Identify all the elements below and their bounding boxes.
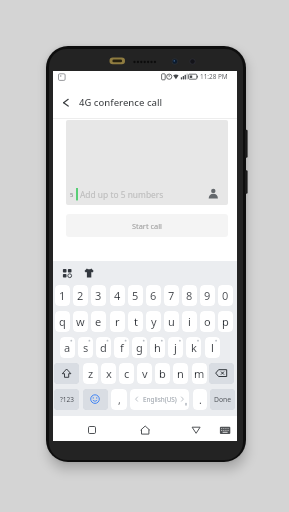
staticText: m	[194, 366, 205, 381]
staticText: j	[174, 340, 177, 355]
button[interactable]: c	[119, 363, 134, 384]
staticText: 6	[150, 288, 157, 303]
staticText: ?123	[60, 395, 74, 404]
button[interactable]: h	[150, 337, 165, 358]
button[interactable]	[189, 423, 203, 437]
button[interactable]	[54, 363, 79, 384]
button[interactable]: ,	[111, 389, 127, 410]
button[interactable]: Start call	[66, 214, 228, 237]
button[interactable]: x	[101, 363, 116, 384]
button[interactable]: n	[173, 363, 188, 384]
staticText: 5	[70, 191, 74, 199]
staticText: Done	[214, 395, 232, 404]
staticText: Start call	[132, 221, 163, 231]
button[interactable]: j	[168, 337, 183, 358]
button[interactable]: u	[164, 311, 179, 332]
button[interactable]: o	[200, 311, 215, 332]
button[interactable]: y	[146, 311, 161, 332]
button[interactable]: 1	[55, 285, 70, 306]
button[interactable]	[218, 423, 232, 437]
staticText: 1	[59, 288, 66, 303]
button[interactable]: 2	[73, 285, 88, 306]
staticText: 11:28 PM	[200, 72, 228, 80]
button[interactable]	[138, 423, 152, 437]
button[interactable]: s	[78, 337, 93, 358]
button[interactable]: z	[83, 363, 98, 384]
button[interactable]: f	[114, 337, 129, 358]
staticText: 7	[168, 288, 175, 303]
button[interactable]	[58, 93, 78, 111]
staticText: c	[124, 366, 130, 381]
button[interactable]	[60, 264, 75, 279]
button[interactable]	[66, 120, 228, 205]
staticText: y	[151, 314, 157, 329]
button[interactable]	[130, 389, 189, 410]
staticText: w	[76, 314, 85, 329]
staticText: Add up to 5 numbers	[80, 189, 164, 200]
button[interactable]: w	[73, 311, 88, 332]
staticText: o	[204, 314, 211, 329]
button[interactable]: .	[193, 389, 207, 410]
button[interactable]: l	[205, 337, 220, 358]
staticText: 8	[186, 288, 193, 303]
staticText: 4	[114, 288, 121, 303]
button[interactable]: 9	[200, 285, 215, 306]
button[interactable]: g	[132, 337, 147, 358]
button[interactable]: t	[128, 311, 143, 332]
staticText: 5	[132, 288, 139, 303]
staticText: d	[100, 340, 107, 355]
staticText: 4G conference call	[79, 96, 163, 109]
staticText: a	[64, 340, 71, 355]
staticText: f	[120, 340, 124, 355]
button[interactable]: i	[182, 311, 197, 332]
button[interactable]: 3	[91, 285, 106, 306]
staticText: .	[199, 393, 202, 407]
button[interactable]: 6	[146, 285, 161, 306]
staticText: n	[177, 366, 184, 381]
button[interactable]	[82, 264, 97, 279]
staticText: k	[191, 340, 197, 355]
staticText: 3	[95, 288, 102, 303]
staticText: q	[59, 314, 66, 329]
staticText: 9	[204, 288, 211, 303]
staticText: p	[222, 314, 229, 329]
button[interactable]: 8	[182, 285, 197, 306]
button[interactable]: p	[218, 311, 233, 332]
button[interactable]	[83, 389, 108, 410]
button[interactable]: v	[137, 363, 152, 384]
button[interactable]: r	[110, 311, 125, 332]
staticText: v	[142, 366, 148, 381]
button[interactable]: e	[91, 311, 106, 332]
button[interactable]: 7	[164, 285, 179, 306]
staticText: English(US)	[143, 395, 177, 404]
button[interactable]: a	[60, 337, 75, 358]
button[interactable]: 0	[218, 285, 233, 306]
button[interactable]: ?123	[54, 389, 79, 410]
staticText: s	[83, 340, 89, 355]
staticText: t	[134, 314, 138, 329]
button[interactable]: 5	[128, 285, 143, 306]
staticText: ,	[118, 393, 121, 407]
staticText: i	[188, 314, 191, 329]
staticText: r	[115, 314, 120, 329]
staticText: z	[88, 366, 94, 381]
staticText: b	[159, 366, 166, 381]
button[interactable]: k	[186, 337, 201, 358]
button[interactable]: d	[96, 337, 111, 358]
button[interactable]	[85, 423, 99, 437]
staticText: x	[106, 366, 112, 381]
button[interactable]	[209, 363, 234, 384]
staticText: g	[136, 340, 143, 355]
staticText: u	[168, 314, 175, 329]
button[interactable]: m	[192, 363, 207, 384]
staticText: 2	[77, 288, 84, 303]
button[interactable]: 4	[110, 285, 125, 306]
button[interactable]: Done	[210, 389, 235, 410]
button[interactable]: q	[55, 311, 70, 332]
staticText: h	[154, 340, 161, 355]
button[interactable]: b	[155, 363, 170, 384]
staticText: e	[95, 314, 102, 329]
staticText: l	[211, 340, 214, 355]
staticText: 0	[222, 288, 229, 303]
